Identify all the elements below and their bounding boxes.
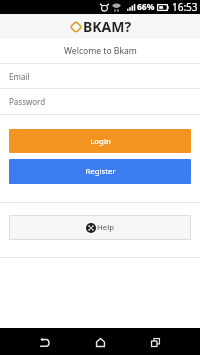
button[interactable]: Recent apps xyxy=(138,328,172,355)
button[interactable]: Login xyxy=(9,129,191,153)
button[interactable]: Register xyxy=(9,159,191,184)
button[interactable]: Password xyxy=(0,89,200,114)
staticText: Email xyxy=(9,71,30,82)
staticText: BKAM? xyxy=(83,17,132,36)
staticText: Login xyxy=(90,136,111,147)
button[interactable]: Email xyxy=(0,64,200,88)
staticText: 16:53 xyxy=(172,0,198,14)
staticText: Help xyxy=(97,222,114,233)
staticText: Register xyxy=(85,166,116,177)
button[interactable]: Back xyxy=(28,328,62,355)
button[interactable]: Help xyxy=(9,215,191,240)
staticText: 66% xyxy=(137,1,155,13)
button[interactable]: Home xyxy=(83,328,117,355)
staticText: Welcome to Bkam xyxy=(64,45,137,57)
staticText: Password xyxy=(9,96,46,107)
